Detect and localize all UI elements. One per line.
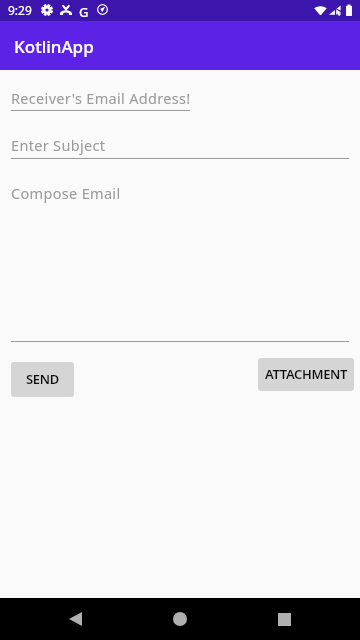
staticText: Compose Email bbox=[11, 183, 121, 203]
button[interactable]: SEND bbox=[11, 362, 74, 397]
button[interactable] bbox=[11, 179, 349, 342]
staticText: Enter Subject bbox=[11, 135, 106, 155]
staticText: Receiver's Email Address! bbox=[11, 88, 191, 108]
button[interactable]: Home bbox=[158, 598, 202, 640]
button[interactable] bbox=[11, 84, 190, 111]
staticText: SEND bbox=[26, 370, 59, 388]
staticText: 9:29 bbox=[8, 2, 32, 18]
button[interactable] bbox=[11, 131, 349, 159]
button[interactable]: Back bbox=[53, 598, 97, 640]
button[interactable]: Recents bbox=[262, 598, 306, 640]
button[interactable]: ATTACHMENT bbox=[258, 358, 354, 391]
staticText: G bbox=[79, 3, 89, 21]
staticText: ATTACHMENT bbox=[265, 365, 348, 383]
staticText: KotlinApp bbox=[14, 35, 94, 58]
